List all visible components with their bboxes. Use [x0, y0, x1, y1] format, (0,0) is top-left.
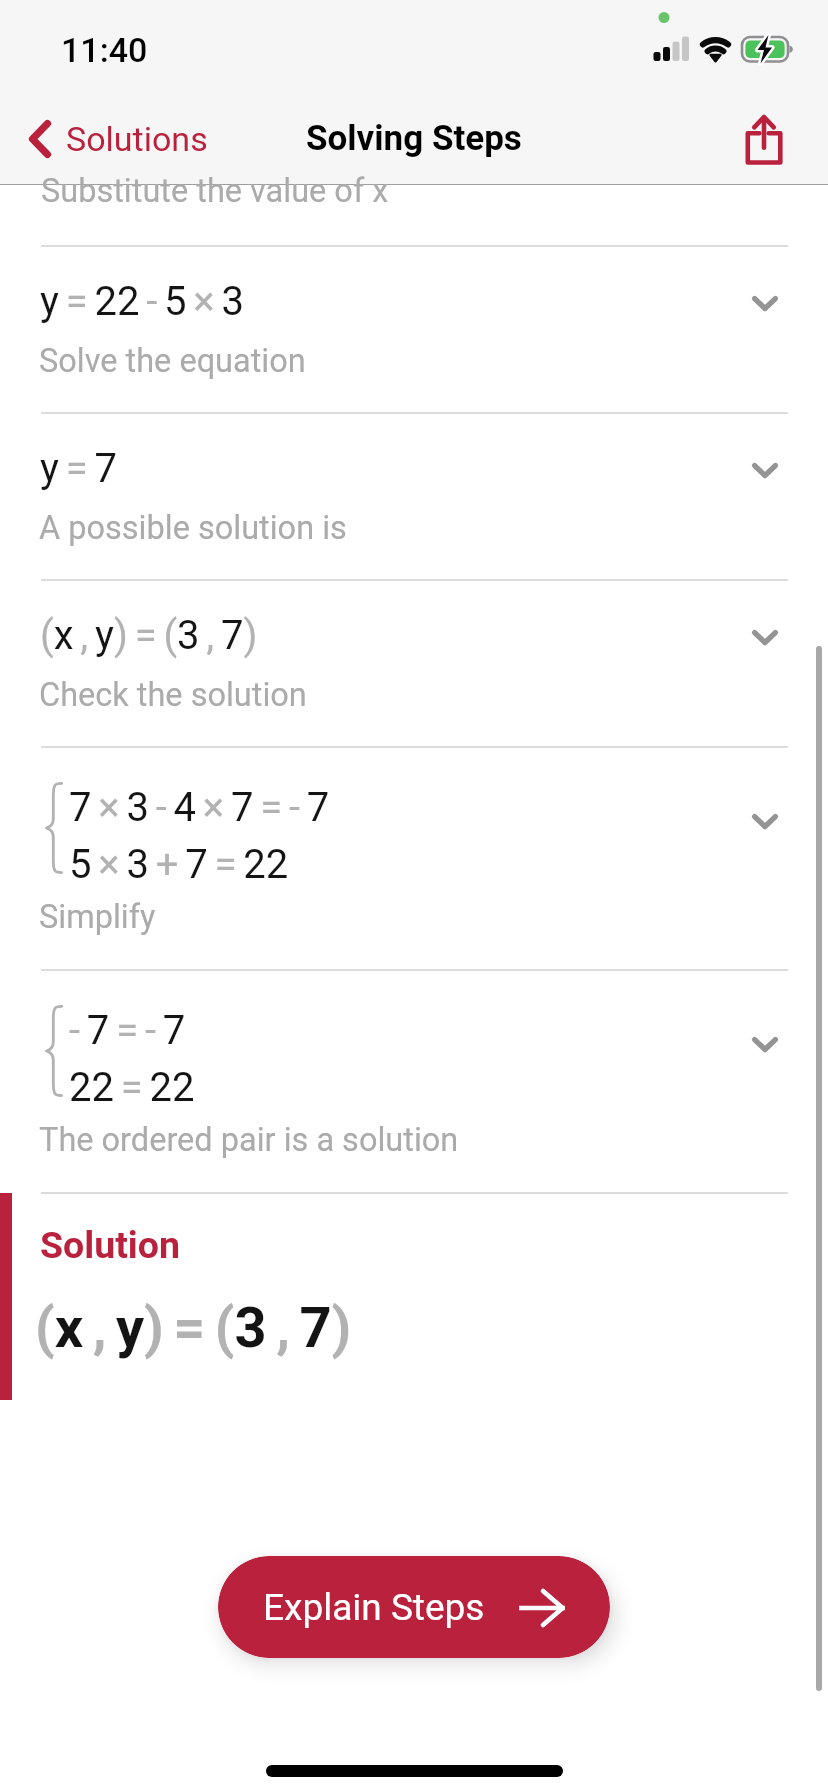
- staticText: (x , y) = (3 , 7): [40, 612, 258, 659]
- button[interactable]: Share: [738, 110, 790, 172]
- staticText: Solve the equation: [39, 342, 306, 380]
- staticText: (x , y) = (3 , 7): [35, 1295, 352, 1361]
- staticText: y = 7: [40, 445, 117, 492]
- button[interactable]: y = 22 - 5 × 3: [0, 245, 828, 412]
- staticText: y = 22 - 5 × 3: [40, 278, 244, 325]
- staticText: Solution: [40, 1223, 181, 1267]
- staticText: Simplify: [39, 898, 156, 936]
- staticText: The ordered pair is a solution: [39, 1121, 459, 1159]
- staticText: 5 × 3 + 7 = 22: [69, 841, 289, 888]
- button[interactable]: Solutions: [0, 103, 230, 175]
- staticText: 22 = 22: [69, 1064, 195, 1111]
- button[interactable]: - 7 = - 7: [0, 969, 828, 1192]
- button[interactable]: 7 × 3 - 4 × 7 = - 7: [0, 746, 828, 969]
- staticText: Solving Steps: [306, 118, 522, 159]
- button[interactable]: Explain Steps: [218, 1556, 610, 1658]
- button[interactable]: y = 7: [0, 412, 828, 579]
- staticText: A possible solution is: [39, 509, 347, 547]
- staticText: 11:40: [61, 30, 148, 70]
- staticText: - 7 = - 7: [69, 1007, 186, 1054]
- staticText: Solutions: [66, 119, 208, 159]
- staticText: Check the solution: [39, 676, 307, 714]
- staticText: Explain Steps: [263, 1586, 485, 1629]
- button[interactable]: (x , y) = (3 , 7): [0, 579, 828, 746]
- staticText: Substitute the value of x: [41, 172, 389, 210]
- staticText: 7 × 3 - 4 × 7 = - 7: [69, 784, 330, 831]
